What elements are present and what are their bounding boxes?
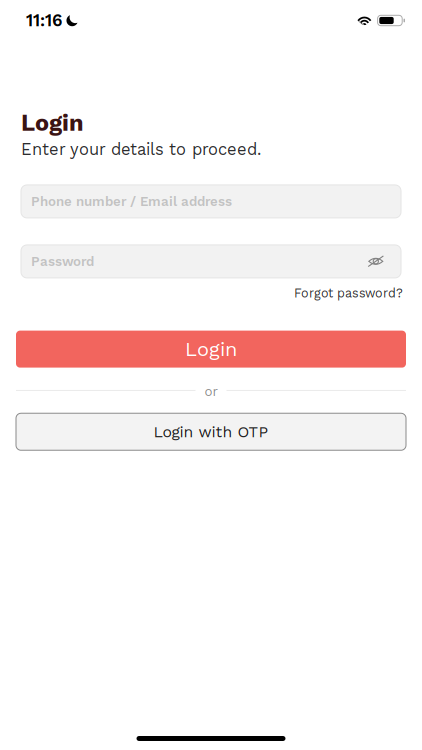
staticText: 11:16 xyxy=(26,10,62,30)
staticText: Login xyxy=(21,109,84,136)
button[interactable]: Login xyxy=(16,331,406,368)
staticText: Phone number / Email address xyxy=(31,194,232,209)
staticText: Enter your details to proceed. xyxy=(21,139,261,159)
button[interactable]: Login with OTP xyxy=(16,413,406,450)
staticText: Password xyxy=(31,254,94,269)
button[interactable]: Forgot password? xyxy=(0,278,422,305)
button[interactable]: Phone number / Email address xyxy=(21,185,401,218)
button[interactable]: Password xyxy=(21,245,401,278)
staticText: Login with OTP xyxy=(153,422,268,441)
staticText: Login xyxy=(185,337,237,361)
staticText: or xyxy=(204,384,217,399)
staticText: Forgot password? xyxy=(294,286,403,301)
